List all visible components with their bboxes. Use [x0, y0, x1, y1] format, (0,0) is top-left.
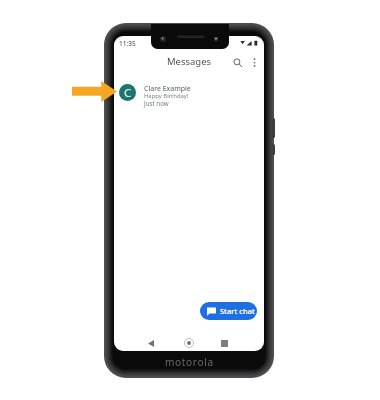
button[interactable]: Back	[143, 335, 159, 351]
button[interactable]: C	[114, 78, 264, 107]
staticText: Clare Example	[144, 84, 191, 94]
button[interactable]: Search	[229, 54, 246, 71]
button[interactable]: Recents	[216, 335, 232, 351]
staticText: 11:35	[119, 39, 136, 48]
button[interactable]: More options	[246, 54, 263, 71]
button[interactable]: Home	[181, 335, 197, 351]
staticText: Start chat	[220, 306, 255, 316]
button[interactable]: Start chat	[200, 302, 257, 320]
staticText: Just now	[144, 99, 169, 107]
staticText: Messages	[114, 55, 264, 68]
staticText: Happy Birthday!	[144, 92, 189, 100]
staticText: motorola	[165, 355, 214, 369]
staticText: C	[124, 85, 132, 101]
